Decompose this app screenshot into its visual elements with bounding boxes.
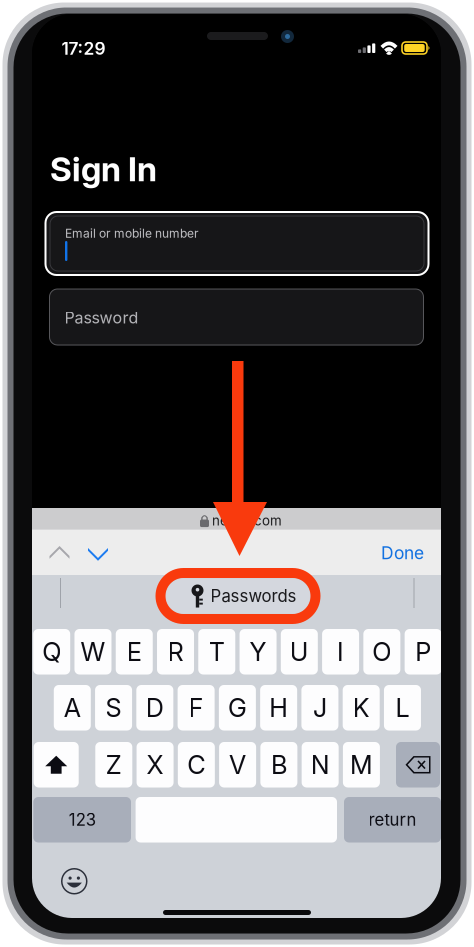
button[interactable]: Emoji keyboard	[61, 868, 87, 894]
staticText: Sign In	[50, 149, 157, 189]
button[interactable]: X	[137, 742, 174, 787]
staticText: N	[311, 749, 330, 780]
staticText: B	[271, 749, 287, 780]
staticText: K	[353, 692, 370, 723]
staticText: Password	[64, 308, 138, 327]
button[interactable]: Q	[33, 629, 70, 674]
button[interactable]: 123	[33, 797, 131, 842]
staticText: U	[290, 636, 309, 667]
staticText: A	[64, 692, 81, 723]
staticText: Email or mobile number	[65, 226, 199, 240]
staticText: V	[229, 749, 246, 780]
staticText: O	[372, 636, 391, 667]
button[interactable]: C	[178, 742, 215, 787]
staticText: I	[337, 636, 344, 667]
button[interactable]: L	[384, 685, 421, 730]
staticText: Done	[381, 542, 424, 563]
button[interactable]: D	[136, 685, 173, 730]
button[interactable]: Delete	[396, 742, 440, 787]
button[interactable]: H	[260, 685, 297, 730]
staticText: H	[269, 692, 288, 723]
button[interactable]: P	[405, 629, 442, 674]
button[interactable]: T	[198, 629, 235, 674]
staticText: P	[415, 636, 431, 667]
button[interactable]: A	[54, 685, 91, 730]
button[interactable]: F	[178, 685, 215, 730]
staticText: R	[167, 636, 183, 667]
staticText: return	[368, 810, 416, 830]
staticText: D	[146, 692, 164, 723]
staticText: L	[395, 692, 409, 723]
button[interactable]: Previous field	[46, 540, 74, 566]
staticText: 123	[69, 810, 96, 830]
staticText: X	[147, 749, 164, 780]
button[interactable]: O	[363, 629, 400, 674]
button[interactable]: Done	[364, 540, 424, 566]
button[interactable]: Shift	[34, 742, 79, 787]
button[interactable]: B	[260, 742, 297, 787]
button[interactable]: Passwords	[150, 563, 315, 619]
staticText: W	[80, 636, 105, 667]
staticText: Y	[249, 636, 266, 667]
button[interactable]: return	[344, 797, 441, 842]
staticText: Passwords	[210, 586, 296, 606]
staticText: netflix.com	[212, 512, 282, 529]
staticText: F	[189, 692, 204, 723]
button[interactable]: J	[301, 685, 338, 730]
staticText: T	[209, 636, 225, 667]
button[interactable]: R	[157, 629, 194, 674]
staticText: Q	[42, 636, 61, 667]
button[interactable]: S	[95, 685, 132, 730]
button[interactable]: M	[343, 742, 380, 787]
button[interactable]: U	[281, 629, 318, 674]
staticText: G	[228, 692, 247, 723]
button[interactable]: K	[343, 685, 380, 730]
staticText: S	[106, 692, 122, 723]
staticText: M	[350, 749, 373, 780]
button[interactable]: W	[74, 629, 111, 674]
button[interactable]: Y	[239, 629, 276, 674]
button[interactable]: E	[116, 629, 153, 674]
staticText: E	[127, 636, 142, 667]
staticText: Z	[106, 749, 122, 780]
button[interactable]: G	[219, 685, 256, 730]
staticText: C	[187, 749, 205, 780]
button[interactable]: Z	[95, 742, 132, 787]
button[interactable]: V	[219, 742, 256, 787]
button[interactable]: N	[302, 742, 339, 787]
button[interactable]: Next field	[85, 540, 113, 566]
button[interactable]: I	[322, 629, 359, 674]
staticText: 17:29	[61, 38, 105, 59]
staticText: J	[313, 692, 327, 723]
